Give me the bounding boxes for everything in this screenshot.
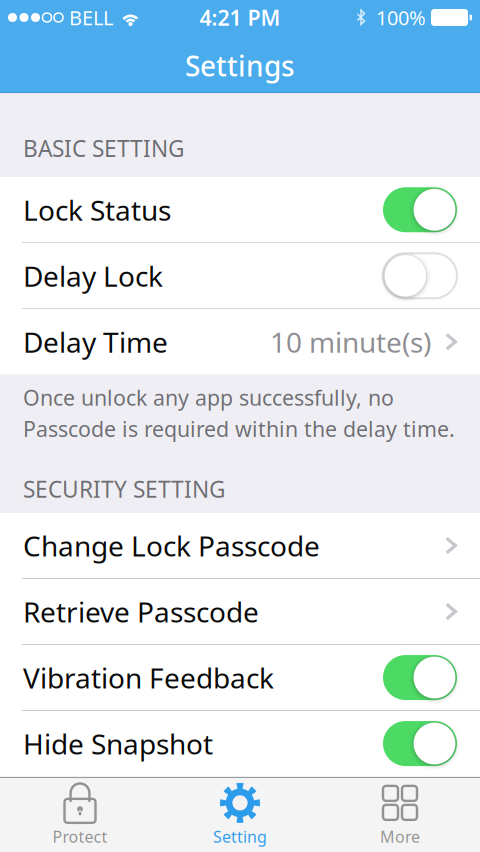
staticText: SECURITY SETTING [23, 474, 226, 504]
staticText: Setting [213, 826, 267, 847]
staticText: 10 minute(s) [270, 323, 431, 360]
staticText: Retrieve Passcode [23, 593, 259, 630]
staticText: BASIC SETTING [23, 133, 185, 163]
button[interactable]: Change Lock Passcode [0, 513, 480, 578]
staticText: Delay Time [23, 323, 168, 360]
staticText: Protect [52, 826, 107, 847]
button[interactable]: Protect [0, 778, 160, 852]
staticText: Passcode is required within the delay ti… [23, 415, 455, 443]
button[interactable]: Delay Lock [0, 243, 480, 308]
staticText: 4:21 PM [199, 3, 280, 32]
staticText: Vibration Feedback [23, 659, 274, 696]
staticText: Settings [185, 47, 295, 84]
staticText: 100% [376, 4, 426, 31]
button[interactable]: Hide Snapshot [0, 711, 480, 776]
button[interactable]: More [320, 778, 480, 852]
staticText: BELL [69, 4, 113, 31]
staticText: Lock Status [23, 191, 171, 228]
staticText: Hide Snapshot [23, 725, 213, 762]
staticText: More [380, 826, 420, 847]
staticText: Delay Lock [23, 257, 163, 294]
button[interactable]: Delay Time [0, 309, 480, 374]
button[interactable]: Vibration Feedback [0, 645, 480, 710]
button[interactable]: Retrieve Passcode [0, 579, 480, 644]
staticText: Change Lock Passcode [23, 527, 320, 564]
button[interactable]: Setting [160, 778, 320, 852]
button[interactable]: Lock Status [0, 177, 480, 242]
staticText: Once unlock any app successfully, no [23, 383, 394, 412]
